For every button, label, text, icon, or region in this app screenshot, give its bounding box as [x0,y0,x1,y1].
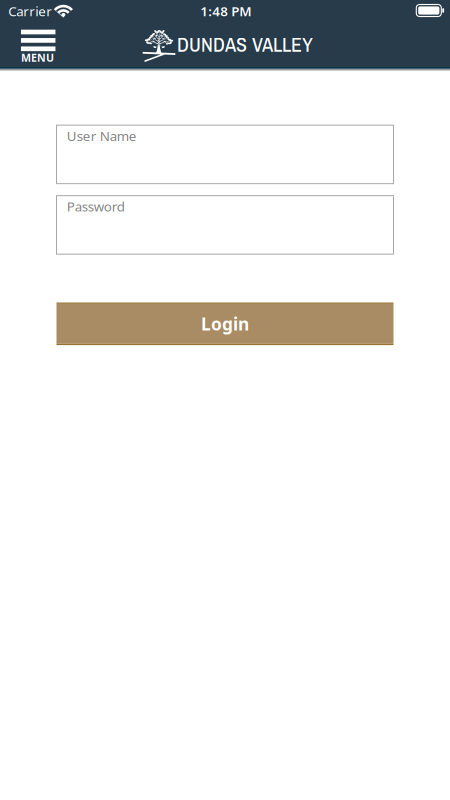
button[interactable]: User Name [56,125,393,184]
staticText: DUNDAS VALLEY [177,31,313,58]
staticText: Password [67,197,125,215]
button[interactable]: Password [56,196,393,254]
staticText: MENU [21,51,54,65]
button[interactable]: Menu [15,26,61,66]
staticText: User Name [67,127,137,145]
staticText: 1:48 PM [200,2,251,20]
staticText: Carrier [8,2,52,20]
staticText: Login [201,312,249,335]
button[interactable]: Login [56,302,393,345]
